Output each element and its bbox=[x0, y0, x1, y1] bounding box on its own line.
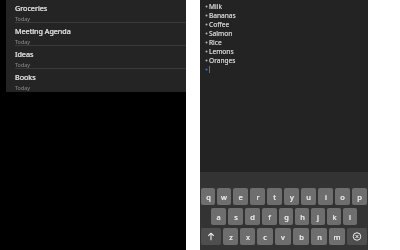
button[interactable]: d bbox=[245, 208, 260, 225]
button[interactable]: f bbox=[262, 208, 277, 225]
staticText: e bbox=[238, 192, 243, 202]
button[interactable]: y bbox=[284, 188, 299, 205]
button[interactable]: k bbox=[327, 208, 341, 225]
staticText: Oranges bbox=[209, 56, 236, 65]
staticText: o bbox=[340, 192, 345, 202]
button[interactable]: w bbox=[217, 188, 231, 205]
staticText: Today bbox=[15, 15, 30, 22]
button[interactable]: m bbox=[329, 228, 345, 245]
button[interactable]: Shift bbox=[201, 228, 221, 245]
button[interactable]: t bbox=[267, 188, 282, 205]
button[interactable]: Books bbox=[6, 69, 186, 92]
button[interactable]: a bbox=[211, 208, 226, 225]
button[interactable]: i bbox=[318, 188, 333, 205]
staticText: l bbox=[349, 212, 351, 222]
button[interactable]: Meeting Agenda bbox=[6, 23, 186, 46]
staticText: u bbox=[306, 192, 311, 202]
button[interactable]: z bbox=[223, 228, 238, 245]
staticText: Salmon bbox=[209, 29, 233, 38]
button[interactable]: l bbox=[343, 208, 357, 225]
staticText: r bbox=[256, 192, 260, 202]
staticText: k bbox=[332, 212, 337, 222]
staticText: Lemons bbox=[209, 47, 234, 56]
staticText: t bbox=[273, 192, 276, 202]
button[interactable]: x bbox=[240, 228, 255, 245]
button[interactable]: Backspace bbox=[347, 228, 367, 245]
staticText: w bbox=[221, 192, 227, 202]
button[interactable]: r bbox=[250, 188, 265, 205]
staticText: s bbox=[234, 212, 238, 222]
staticText: i bbox=[325, 192, 327, 202]
staticText: q bbox=[206, 192, 211, 202]
staticText: Rice bbox=[209, 38, 222, 47]
button[interactable]: e bbox=[233, 188, 248, 205]
button[interactable]: p bbox=[352, 188, 367, 205]
staticText: c bbox=[263, 232, 267, 242]
staticText: Today bbox=[15, 84, 30, 91]
button[interactable]: Ideas bbox=[6, 46, 186, 69]
staticText: a bbox=[216, 212, 221, 222]
staticText: g bbox=[284, 212, 289, 222]
button[interactable]: q bbox=[201, 188, 215, 205]
button[interactable]: g bbox=[279, 208, 293, 225]
button[interactable]: h bbox=[295, 208, 309, 225]
staticText: Milk bbox=[209, 2, 222, 11]
staticText: h bbox=[300, 212, 305, 222]
staticText: z bbox=[229, 232, 233, 242]
button[interactable]: Groceries bbox=[6, 0, 186, 23]
button[interactable]: s bbox=[228, 208, 243, 225]
staticText: y bbox=[290, 192, 294, 202]
button[interactable]: n bbox=[311, 228, 327, 245]
staticText: p bbox=[357, 192, 362, 202]
staticText: m bbox=[333, 232, 341, 242]
button[interactable]: j bbox=[311, 208, 325, 225]
button[interactable]: b bbox=[293, 228, 309, 245]
staticText: Coffee bbox=[209, 20, 230, 29]
button[interactable]: u bbox=[301, 188, 316, 205]
staticText: j bbox=[317, 212, 319, 222]
button[interactable]: c bbox=[257, 228, 273, 245]
staticText: f bbox=[268, 212, 271, 222]
staticText: Meeting Agenda bbox=[15, 26, 71, 36]
staticText: b bbox=[299, 232, 304, 242]
staticText: Today bbox=[15, 61, 30, 68]
staticText: Books bbox=[15, 72, 36, 82]
staticText: n bbox=[317, 232, 322, 242]
staticText: x bbox=[246, 232, 250, 242]
button[interactable]: v bbox=[275, 228, 291, 245]
staticText: Ideas bbox=[15, 49, 34, 59]
staticText: d bbox=[250, 212, 255, 222]
staticText: Groceries bbox=[15, 3, 48, 13]
staticText: Bananas bbox=[209, 11, 236, 20]
staticText: Today bbox=[15, 38, 30, 45]
button[interactable]: o bbox=[335, 188, 350, 205]
staticText: v bbox=[281, 232, 285, 242]
